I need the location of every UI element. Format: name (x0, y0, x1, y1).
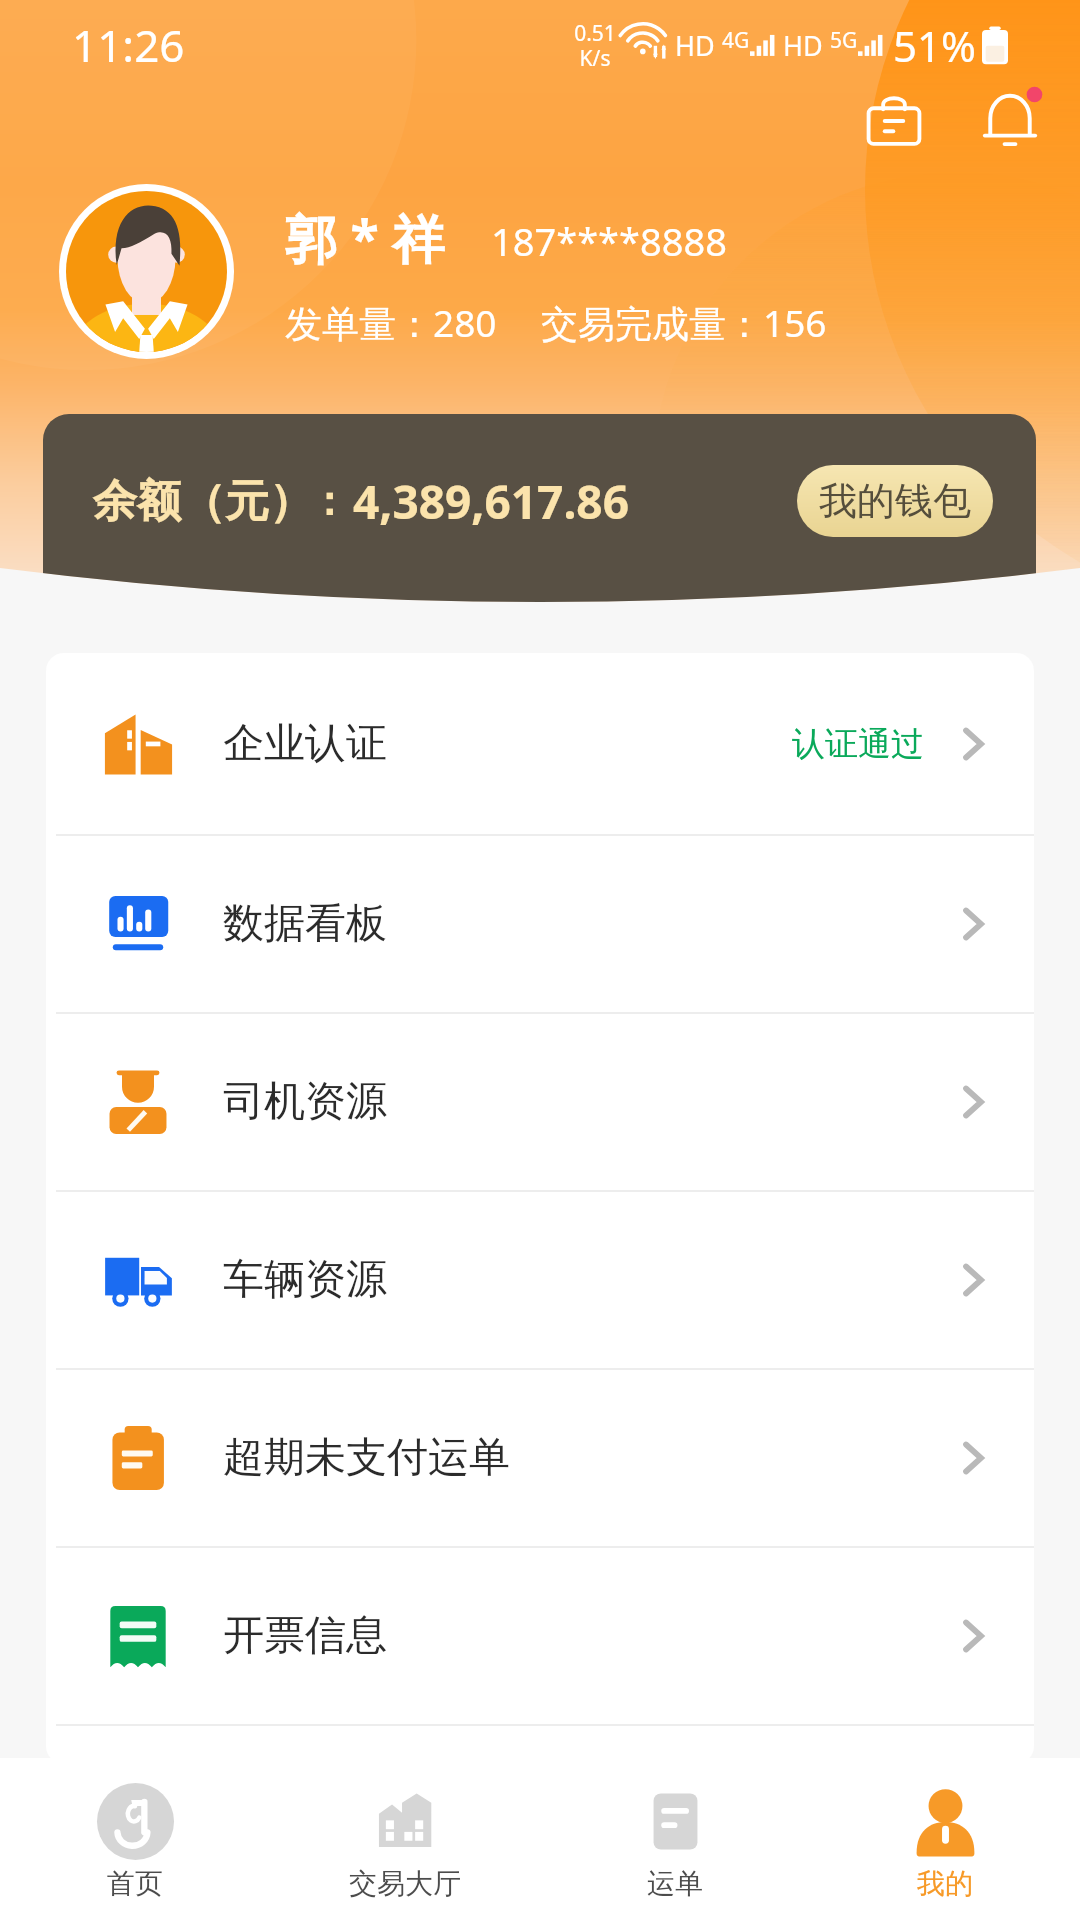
staticText: 11:26 (72, 15, 185, 75)
button[interactable]: 运单 (540, 1758, 810, 1920)
button[interactable]: Notifications (972, 83, 1048, 159)
staticText: 企业认证 (223, 718, 387, 770)
staticText: 司机资源 (223, 1076, 387, 1128)
staticText: 我的 (917, 1866, 973, 1901)
staticText: 发单量：280 (285, 297, 497, 348)
button[interactable]: 我的钱包 (797, 465, 993, 537)
staticText: 0.51 K/s (574, 19, 616, 72)
button[interactable]: 企业认证 (46, 653, 1034, 834)
staticText: 郭 * 祥 (285, 202, 445, 273)
button[interactable]: My orders (856, 83, 932, 159)
staticText: 超期未支付运单 (223, 1432, 510, 1484)
staticText: 车辆资源 (223, 1254, 387, 1306)
staticText: 开票信息 (223, 1610, 387, 1662)
staticText: 5G (830, 26, 858, 55)
button[interactable]: 交易大厅 (270, 1758, 540, 1920)
staticText: 交易大厅 (349, 1866, 461, 1901)
button[interactable]: 车辆资源 (46, 1192, 1034, 1368)
button[interactable]: 司机资源 (46, 1014, 1034, 1190)
staticText: 首页 (107, 1866, 163, 1901)
staticText: 187****8888 (491, 215, 727, 267)
staticText: 51% (893, 17, 976, 74)
button[interactable]: 我的 (810, 1758, 1080, 1920)
staticText: 运单 (647, 1866, 703, 1901)
staticText: 认证通过 (792, 723, 924, 765)
staticText: ： (309, 476, 349, 526)
button[interactable]: Avatar (66, 191, 227, 352)
button[interactable]: 首页 (0, 1758, 270, 1920)
staticText: 我的钱包 (819, 477, 971, 525)
staticText: HD (783, 27, 823, 64)
button[interactable]: 数据看板 (46, 836, 1034, 1012)
staticText: 4,389,617.86 (353, 470, 629, 533)
button[interactable]: 开票信息 (46, 1548, 1034, 1724)
button[interactable]: 超期未支付运单 (46, 1370, 1034, 1546)
staticText: 交易完成量：156 (541, 297, 827, 348)
staticText: 余额（元） (93, 474, 313, 529)
staticText: 数据看板 (223, 898, 387, 950)
staticText: HD (675, 27, 715, 64)
staticText: 4G (722, 26, 750, 55)
